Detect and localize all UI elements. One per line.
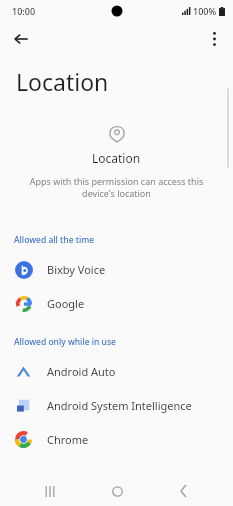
staticText: Allowed all the time	[14, 234, 95, 246]
staticText: Allowed only while in use	[14, 336, 116, 348]
staticText: Bixby Voice	[47, 262, 106, 277]
staticText: Google	[47, 296, 85, 311]
staticText: Chrome	[47, 432, 89, 447]
staticText: Location	[16, 66, 109, 97]
staticText: Android Auto	[47, 364, 116, 379]
staticText: Android System Intelligence	[47, 398, 192, 413]
staticText: Location	[92, 150, 141, 166]
button[interactable]: Google	[0, 286, 233, 320]
button[interactable]: Back	[166, 476, 200, 506]
button[interactable]: Chrome	[0, 422, 233, 456]
button[interactable]: Home	[100, 476, 134, 506]
staticText: Apps with this permission can access thi…	[22, 175, 211, 200]
button[interactable]: Bixby Voice	[0, 252, 233, 286]
staticText: 10:00	[12, 5, 36, 17]
button[interactable]: More options	[199, 24, 229, 54]
button[interactable]: Recent apps	[33, 476, 67, 506]
staticText: 100%	[193, 5, 217, 17]
button[interactable]: Android System Intelligence	[0, 388, 233, 422]
button[interactable]: Back	[6, 24, 36, 54]
button[interactable]: Android Auto	[0, 354, 233, 388]
